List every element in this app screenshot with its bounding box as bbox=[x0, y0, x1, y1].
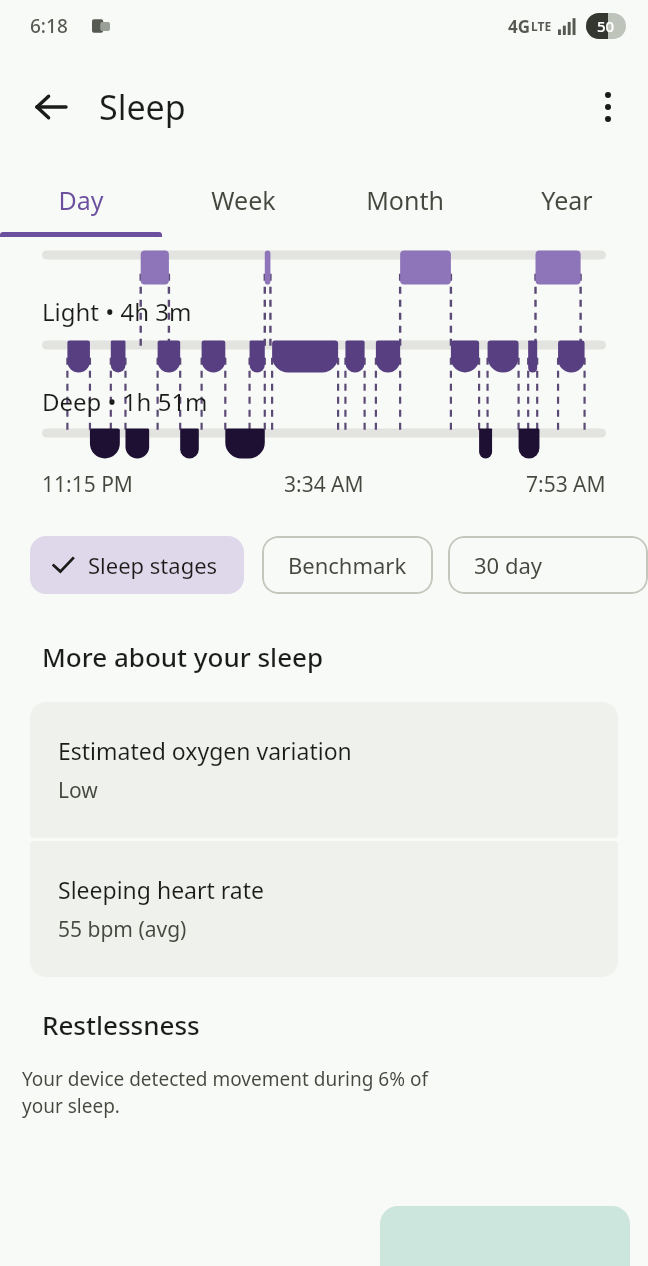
staticText: Week bbox=[211, 183, 276, 217]
button[interactable]: More options bbox=[582, 81, 634, 133]
staticText: Light • 4h 3m bbox=[42, 295, 192, 328]
button[interactable]: Week bbox=[162, 162, 324, 237]
staticText: Sleep stages bbox=[88, 550, 218, 580]
button[interactable]: Estimated oxygen variation bbox=[30, 702, 618, 838]
staticText: 30 day average bbox=[474, 550, 622, 580]
button[interactable]: Sleep stages bbox=[30, 536, 244, 594]
button[interactable]: Log sleep bbox=[380, 1206, 630, 1266]
staticText: Restlessness bbox=[42, 1007, 200, 1042]
staticText: Sleep bbox=[99, 84, 186, 130]
button[interactable]: 30 day average bbox=[448, 536, 648, 594]
staticText: Sleeping heart rate bbox=[58, 874, 265, 905]
button[interactable]: Sleeping heart rate bbox=[30, 841, 618, 977]
staticText: Deep • 1h 51m bbox=[42, 385, 208, 418]
staticText: Low bbox=[58, 776, 98, 805]
staticText: Year bbox=[541, 183, 593, 217]
staticText: 50 bbox=[597, 16, 615, 36]
button[interactable]: Day bbox=[0, 162, 162, 237]
staticText: Day bbox=[58, 183, 104, 217]
staticText: Your device detected movement during 6% … bbox=[22, 1066, 428, 1119]
staticText: Month bbox=[366, 183, 444, 217]
button[interactable]: Year bbox=[486, 162, 648, 237]
button[interactable]: Back bbox=[22, 78, 80, 136]
staticText: 4G bbox=[508, 15, 531, 38]
staticText: LTE bbox=[531, 18, 552, 34]
staticText: Estimated oxygen variation bbox=[58, 735, 352, 766]
staticText: 11:15 PM bbox=[42, 470, 133, 499]
staticText: More about your sleep bbox=[42, 639, 324, 674]
button[interactable]: Benchmark bbox=[262, 536, 433, 594]
staticText: 7:53 AM bbox=[526, 470, 606, 499]
staticText: 6:18 bbox=[30, 13, 68, 39]
staticText: 3:34 AM bbox=[284, 470, 364, 499]
staticText: Benchmark bbox=[288, 550, 407, 580]
button[interactable]: Month bbox=[324, 162, 486, 237]
staticText: 55 bpm (avg) bbox=[58, 915, 187, 944]
